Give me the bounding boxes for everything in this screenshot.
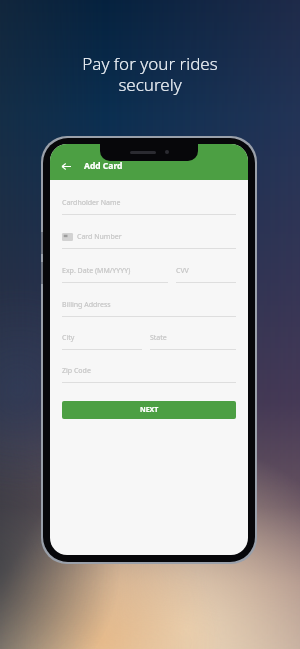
staticText: Zip Code <box>62 366 91 376</box>
staticText: Pay for your rides securely <box>0 52 300 96</box>
button[interactable]: Back <box>58 158 74 174</box>
staticText: Cardholder Name <box>62 198 121 208</box>
button[interactable]: Billing Address <box>62 300 236 317</box>
staticText: Add Card <box>84 160 123 172</box>
staticText: City <box>62 333 75 343</box>
staticText: Billing Address <box>62 300 111 310</box>
button[interactable]: Card Number <box>62 232 236 249</box>
staticText: CVV <box>176 266 189 276</box>
button[interactable]: Exp. Date (MM/YYYY) <box>62 266 168 283</box>
button[interactable]: City <box>62 333 142 350</box>
staticText: State <box>150 333 167 343</box>
staticText: Card Number <box>77 232 122 242</box>
staticText: Exp. Date (MM/YYYY) <box>62 266 131 276</box>
button[interactable]: NEXT <box>62 401 236 419</box>
button[interactable]: Zip Code <box>62 366 236 383</box>
staticText: NEXT <box>140 405 159 415</box>
button[interactable]: CVV <box>176 266 236 283</box>
button[interactable]: Cardholder Name <box>62 198 236 215</box>
button[interactable]: State <box>150 333 236 350</box>
